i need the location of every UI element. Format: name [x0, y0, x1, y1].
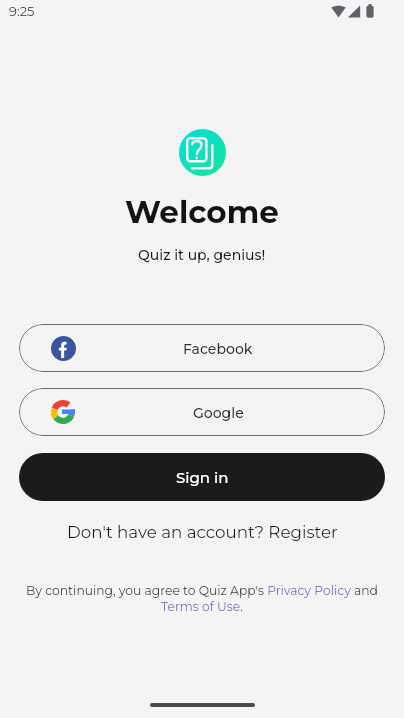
staticText: Don't have an account? Register — [67, 522, 338, 542]
staticText: Facebook — [183, 340, 253, 357]
staticText: By continuing, you agree to Quiz App's P… — [22, 583, 382, 614]
staticText: Sign in — [176, 468, 229, 486]
button[interactable]: Google — [19, 388, 385, 436]
button[interactable]: Facebook — [19, 324, 385, 372]
button[interactable]: Sign in — [19, 453, 385, 501]
staticText: Welcome — [125, 193, 279, 231]
button[interactable]: Don't have an account? Register — [57, 517, 348, 547]
staticText: Quiz it up, genius! — [138, 246, 266, 263]
staticText: 9:25 — [9, 3, 35, 19]
staticText: Google — [193, 404, 244, 421]
